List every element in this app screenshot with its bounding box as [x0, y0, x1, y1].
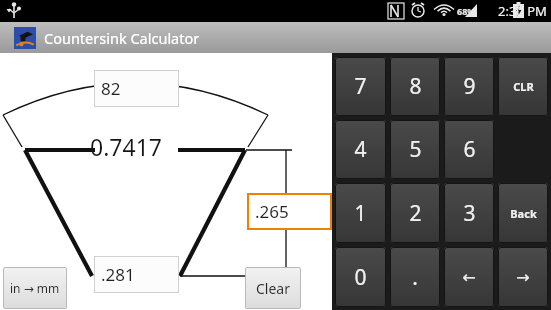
button[interactable]: .265: [247, 193, 332, 230]
staticText: 0.7417: [90, 131, 162, 162]
staticText: 2:30 PM: [498, 2, 547, 20]
staticText: .281: [101, 263, 135, 286]
staticText: 82: [101, 77, 121, 100]
staticText: ←: [462, 268, 476, 287]
button[interactable]: 2: [390, 183, 440, 243]
button[interactable]: Clear: [245, 267, 301, 309]
staticText: →: [516, 268, 530, 287]
staticText: 6: [463, 135, 476, 164]
staticText: .: [412, 263, 418, 292]
staticText: 0: [354, 263, 367, 292]
button[interactable]: 6: [444, 120, 494, 179]
button[interactable]: 82: [94, 70, 179, 107]
button[interactable]: 1: [335, 183, 386, 243]
staticText: CLR: [513, 79, 534, 94]
staticText: Back: [510, 206, 537, 221]
button[interactable]: 9: [444, 57, 494, 116]
staticText: 8: [409, 72, 422, 101]
staticText: Clear: [256, 279, 290, 298]
staticText: 3: [463, 199, 476, 228]
staticText: 1: [354, 199, 367, 228]
button[interactable]: .281: [94, 256, 179, 293]
staticText: .265: [255, 200, 289, 223]
button[interactable]: 0: [335, 247, 386, 307]
button[interactable]: 3: [444, 183, 494, 243]
button[interactable]: 5: [390, 120, 440, 179]
button[interactable]: 8: [390, 57, 440, 116]
button[interactable]: 7: [335, 57, 386, 116]
staticText: 4: [354, 135, 367, 164]
staticText: 9: [463, 72, 476, 101]
staticText: 5: [409, 135, 422, 164]
button[interactable]: Left: [444, 247, 494, 307]
staticText: 68%: [457, 5, 476, 17]
staticText: 2: [409, 199, 422, 228]
button[interactable]: CLR: [498, 57, 548, 116]
button[interactable]: Right: [498, 247, 548, 307]
staticText: in → mm: [10, 280, 60, 296]
button[interactable]: .: [390, 247, 440, 307]
button[interactable]: 4: [335, 120, 386, 179]
button[interactable]: in → mm: [3, 267, 67, 309]
button[interactable]: Back: [498, 183, 548, 243]
staticText: 7: [354, 72, 367, 101]
staticText: Countersink Calculator: [44, 28, 200, 48]
